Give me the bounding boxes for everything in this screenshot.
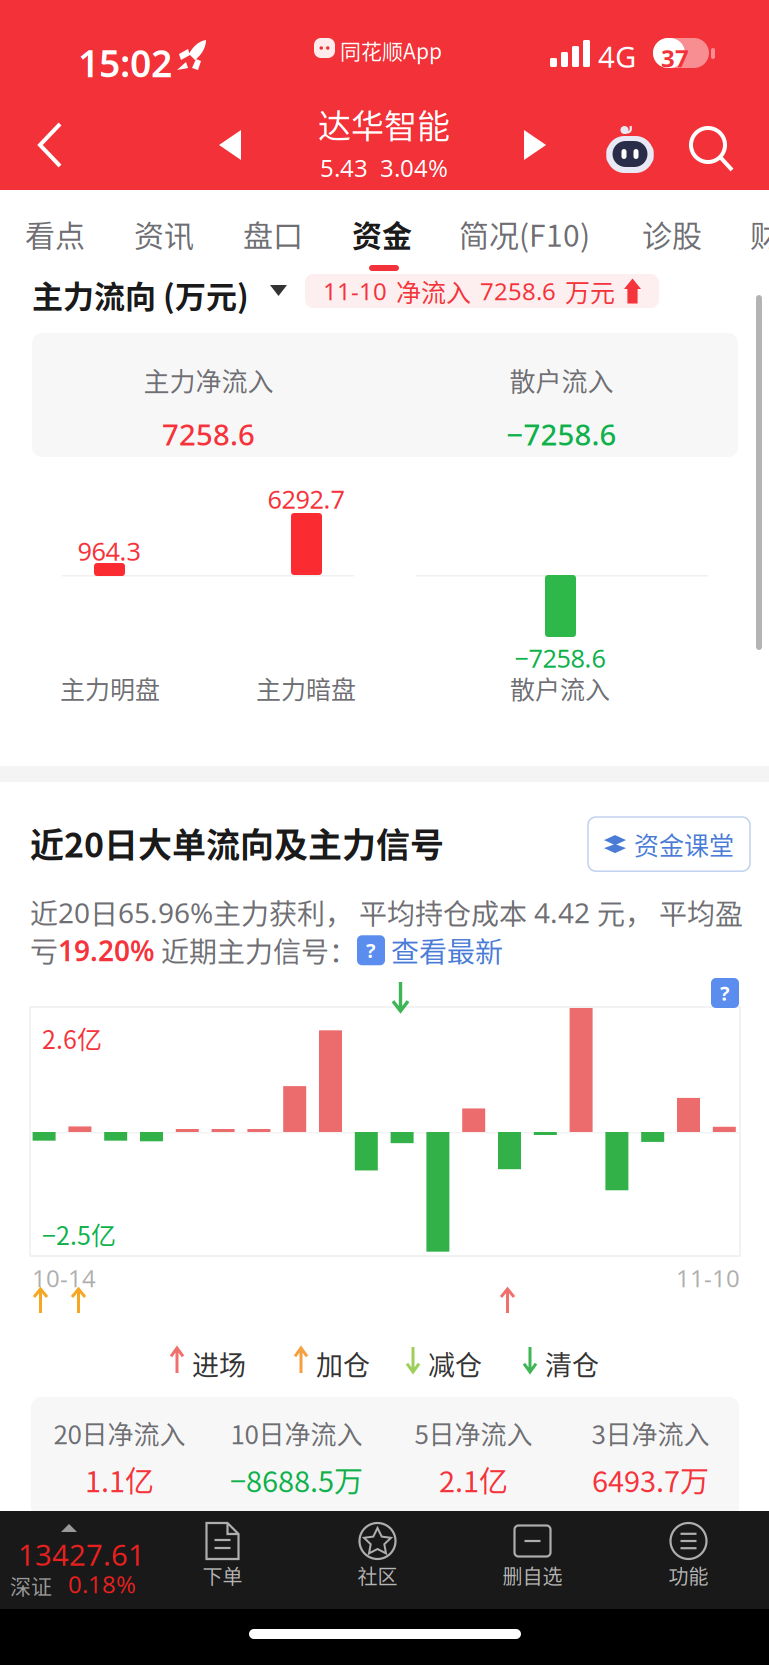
staticText: 功能 [668, 1561, 708, 1590]
staticText: 近期主力信号： [155, 930, 357, 970]
staticText: −7258.6 [514, 641, 605, 675]
staticText: 删自选 [502, 1561, 562, 1590]
staticText: 20日净流入 [53, 1414, 185, 1452]
staticText: 下单 [202, 1561, 242, 1590]
button[interactable]: 11-10 [305, 274, 659, 308]
staticText: 主力流向 (万元) [32, 272, 249, 317]
staticText: 10日净流入 [230, 1414, 362, 1452]
staticText: 主力明盘 [60, 670, 160, 706]
staticText: 4.42 [527, 894, 597, 931]
staticText: 看点 [25, 212, 85, 255]
staticText: 元， [597, 892, 653, 932]
button[interactable]: 财 [750, 190, 769, 286]
staticText: 7258.6 [480, 275, 556, 307]
staticText: 万元 [565, 273, 615, 309]
staticText: −7258.6 [506, 415, 616, 454]
staticText: 13427.61 [18, 1535, 145, 1574]
staticText: ? [720, 980, 730, 1006]
staticText: 主力净流入 [143, 361, 273, 399]
button[interactable]: AI assistant [595, 113, 665, 183]
button[interactable]: 诊股 [642, 190, 704, 286]
staticText: 达华智能 [318, 100, 450, 148]
staticText: −8688.5万 [230, 1459, 363, 1501]
staticText: 诊股 [642, 212, 702, 255]
staticText: 7258.6 [162, 415, 255, 454]
staticText: 散户流入 [509, 361, 613, 399]
staticText: 日 [90, 892, 118, 932]
staticText: 1.1亿 [85, 1459, 154, 1501]
staticText: 平均持仓成本 [353, 892, 527, 932]
staticText: −2.5亿 [42, 1216, 116, 1252]
staticText: 减仓 [428, 1344, 482, 1383]
button[interactable]: 资金 [352, 190, 414, 286]
staticText: 2.6亿 [42, 1020, 102, 1056]
staticText: 查看最新 [385, 930, 503, 970]
staticText: 11-10 [323, 275, 387, 307]
staticText: 亏 [30, 930, 58, 970]
staticText: 清仓 [545, 1344, 599, 1383]
staticText: 11-10 [676, 1262, 740, 1294]
button[interactable]: 资讯 [134, 190, 196, 286]
button[interactable]: 看点 [25, 190, 87, 286]
button[interactable]: Previous stock [195, 105, 265, 185]
staticText: 深证 [10, 1570, 52, 1600]
staticText: 主力获利， [213, 892, 353, 932]
staticText: 进场 [192, 1344, 246, 1383]
staticText: 3.04% [380, 152, 448, 184]
staticText: 资讯 [134, 212, 194, 255]
staticText: 3日净流入 [591, 1414, 709, 1452]
button[interactable]: 简况(F10) [459, 190, 627, 286]
button[interactable]: 盘口 [243, 190, 305, 286]
staticText: 15:02 [78, 38, 172, 88]
staticText: 同花顺App [340, 35, 442, 65]
staticText: 19.20% [58, 932, 155, 969]
staticText: ? [366, 937, 376, 964]
button[interactable]: 功能 [611, 1511, 766, 1609]
staticText: 盘口 [243, 212, 303, 255]
staticText: 4G [598, 37, 636, 76]
staticText: 资金 [352, 212, 412, 255]
staticText: 65.96% [118, 894, 213, 931]
button[interactable]: 删自选 [455, 1511, 610, 1609]
staticText: 5.43 [320, 152, 368, 184]
button[interactable]: 资金课堂 [588, 817, 750, 871]
button[interactable]: 下单 [145, 1511, 300, 1609]
staticText: 资金课堂 [634, 826, 734, 862]
staticText: 6292.7 [267, 482, 344, 516]
staticText: 简况(F10) [459, 212, 590, 255]
staticText: 37 [661, 42, 689, 74]
staticText: 近20日大单流向及主力信号 [30, 818, 444, 867]
staticText: 净流入 [396, 273, 471, 309]
staticText: 散户流入 [510, 670, 610, 706]
staticText: 2.1亿 [439, 1459, 508, 1501]
button[interactable]: Next stock [500, 105, 570, 185]
staticText: 6493.7万 [592, 1459, 709, 1501]
staticText: 加仓 [316, 1344, 370, 1383]
staticText: 964.3 [77, 534, 140, 568]
staticText: 10-14 [32, 1262, 96, 1294]
staticText: 0.18% [68, 1568, 136, 1600]
staticText: 社区 [357, 1561, 397, 1590]
button[interactable]: 13427.61 [0, 1511, 155, 1609]
staticText: 平均盈 [653, 892, 743, 932]
staticText: 财 [750, 212, 769, 255]
button[interactable]: Search [680, 117, 746, 183]
staticText: 20 [58, 894, 90, 931]
staticText: 5日净流入 [414, 1414, 532, 1452]
staticText: 近 [30, 892, 58, 932]
button[interactable]: Back [8, 100, 92, 190]
staticText: 主力暗盘 [256, 670, 356, 706]
button[interactable]: 社区 [300, 1511, 455, 1609]
